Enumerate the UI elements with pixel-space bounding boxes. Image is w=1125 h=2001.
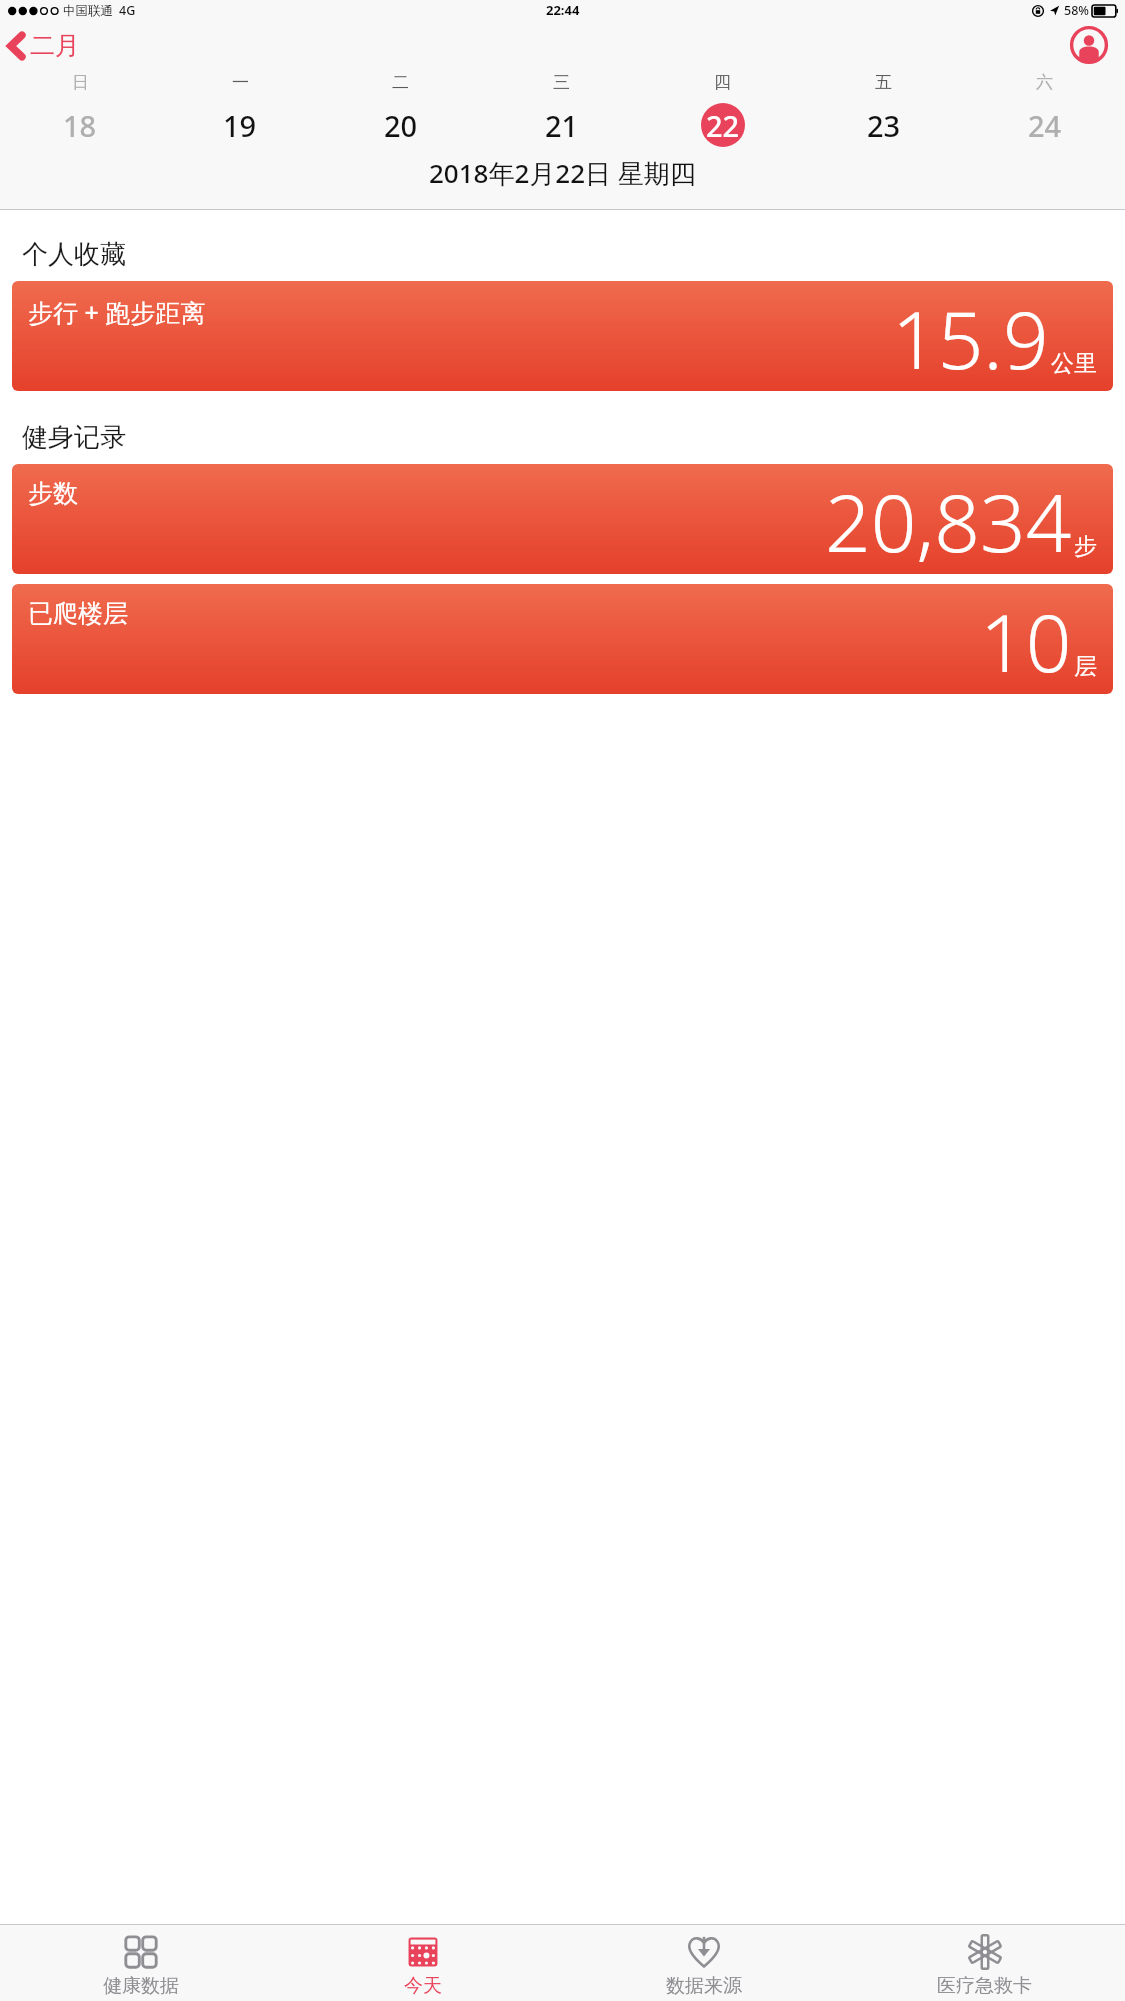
staticText: 步行 + 跑步距离 <box>28 295 206 329</box>
staticText: 15.9 <box>892 283 1049 391</box>
staticText: 二月 <box>30 30 80 61</box>
button[interactable]: 20 <box>320 103 481 147</box>
staticText: 数据来源 <box>666 1974 742 1998</box>
button[interactable]: 19 <box>160 103 320 147</box>
staticText: 三 <box>553 72 570 93</box>
staticText: 今天 <box>404 1974 442 1998</box>
staticText: 六 <box>1036 72 1053 93</box>
staticText: 22:44 <box>546 1 580 19</box>
button[interactable]: 23 <box>803 103 964 147</box>
staticText: 四 <box>714 72 731 93</box>
button[interactable]: 18 <box>0 103 160 147</box>
button[interactable]: 步行 + 跑步距离 <box>12 281 1113 391</box>
staticText: 二 <box>392 72 409 93</box>
staticText: 五 <box>875 72 892 93</box>
button[interactable]: 已爬楼层 <box>12 584 1113 694</box>
staticText: 健身记录 <box>22 421 126 454</box>
button[interactable]: 二月 <box>0 26 92 65</box>
staticText: 公里 <box>1051 349 1097 378</box>
staticText: 19 <box>223 106 257 145</box>
staticText: 日 <box>72 72 89 93</box>
staticText: 4G <box>119 2 136 19</box>
staticText: 10 <box>980 586 1072 694</box>
staticText: 已爬楼层 <box>28 598 128 629</box>
staticText: 22 <box>706 106 740 145</box>
button[interactable]: 健康数据 <box>0 1925 282 2001</box>
button[interactable]: 今天 <box>282 1925 563 2001</box>
staticText: 个人收藏 <box>22 238 126 271</box>
staticText: 20 <box>384 106 418 145</box>
button[interactable]: 22 <box>642 103 803 147</box>
staticText: 步数 <box>28 478 78 509</box>
staticText: 中国联通 <box>63 3 113 19</box>
button[interactable]: 21 <box>481 103 642 147</box>
staticText: 58% <box>1064 2 1089 19</box>
button[interactable]: 医疗急救卡 <box>844 1925 1125 2001</box>
staticText: 层 <box>1074 652 1097 681</box>
staticText: 2018年2月22日 星期四 <box>429 155 696 191</box>
staticText: 一 <box>232 72 249 93</box>
button[interactable]: 24 <box>964 103 1125 147</box>
staticText: 健康数据 <box>103 1974 179 1998</box>
staticText: 步 <box>1074 532 1097 561</box>
staticText: 24 <box>1028 106 1062 145</box>
staticText: 21 <box>545 106 579 145</box>
button[interactable]: 步数 <box>12 464 1113 574</box>
staticText: 18 <box>63 106 97 145</box>
staticText: 20,834 <box>825 466 1072 574</box>
button[interactable]: 数据来源 <box>563 1925 844 2001</box>
staticText: 医疗急救卡 <box>937 1974 1032 1998</box>
staticText: 23 <box>867 106 901 145</box>
button[interactable]: Profile <box>1069 25 1109 65</box>
